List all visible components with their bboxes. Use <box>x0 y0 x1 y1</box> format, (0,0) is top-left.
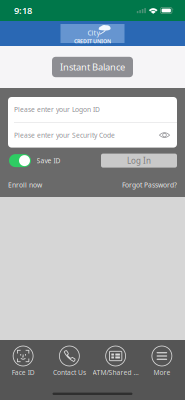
button[interactable]: Forgot Password? <box>122 181 177 189</box>
button[interactable]: Face ID <box>0 346 46 377</box>
button[interactable]: Save ID <box>9 154 60 167</box>
button[interactable]: Contact Us <box>46 346 92 377</box>
staticText: CREDIT UNION <box>74 38 111 45</box>
staticText: More <box>153 368 170 377</box>
button[interactable]: ATM/Shared Bran… <box>92 346 139 377</box>
staticText: 9:18 <box>14 4 32 17</box>
staticText: Enroll now <box>8 181 42 189</box>
staticText: Log In <box>127 155 151 166</box>
staticText: Forgot Password? <box>122 181 177 189</box>
button[interactable]: Instant Balance <box>52 57 133 77</box>
staticText: Face ID <box>12 368 35 377</box>
button[interactable]: Log In <box>101 154 177 168</box>
staticText: City <box>87 28 100 37</box>
staticText: Please enter your Logon ID <box>14 105 100 114</box>
staticText: ATM/Shared Bran… <box>92 368 139 377</box>
button[interactable]: Enroll now <box>8 181 42 189</box>
staticText: Please enter your Security Code <box>14 131 115 140</box>
button[interactable]: More <box>139 346 185 377</box>
staticText: Instant Balance <box>60 61 125 73</box>
staticText: Contact Us <box>53 368 86 377</box>
staticText: Save ID <box>36 156 60 165</box>
